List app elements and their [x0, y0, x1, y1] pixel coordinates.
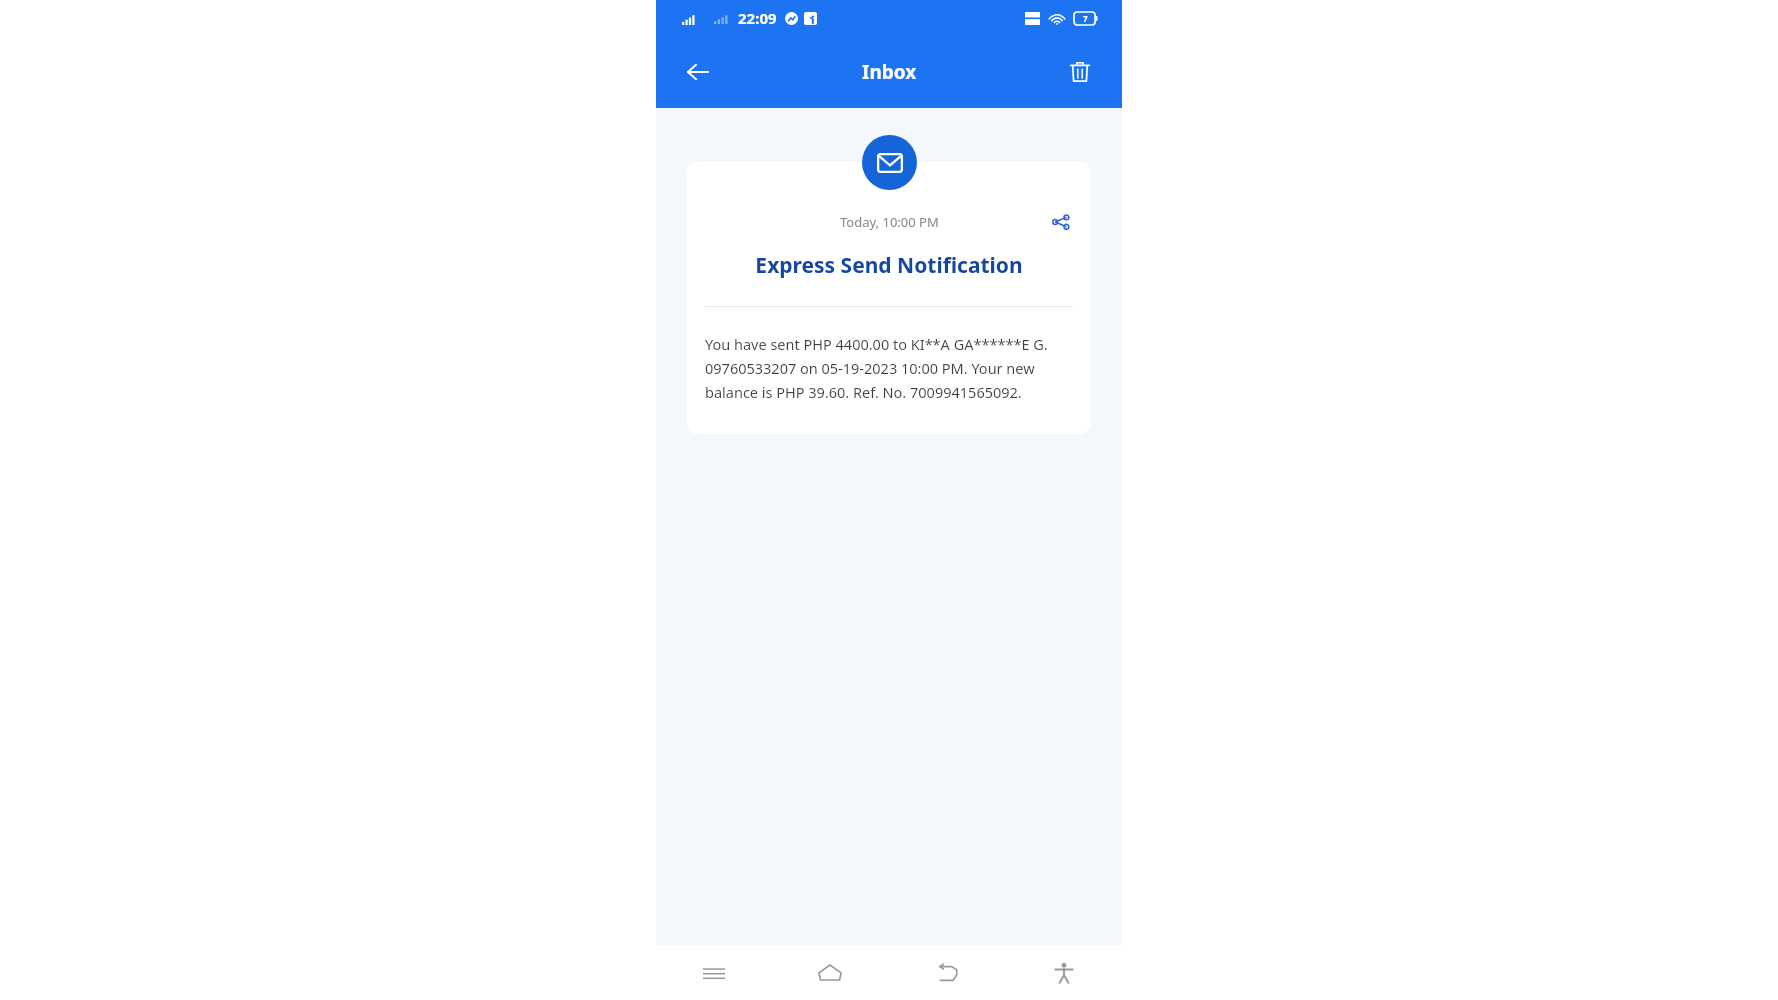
staticText: Today, 10:00 PM: [840, 213, 939, 231]
button[interactable]: Share: [1045, 206, 1077, 238]
button[interactable]: Delete: [1058, 50, 1102, 94]
button[interactable]: Accessibility: [1005, 945, 1122, 1000]
button[interactable]: Back: [888, 945, 1005, 1000]
staticText: Inbox: [862, 59, 917, 85]
staticText: Express Send Notification: [699, 251, 1079, 280]
staticText: 22:09: [738, 8, 777, 28]
staticText: 7: [1083, 13, 1088, 24]
button[interactable]: Menu: [656, 945, 772, 1000]
button[interactable]: Message: [862, 135, 917, 190]
button[interactable]: Home: [772, 945, 888, 1000]
button[interactable]: Back: [676, 50, 720, 94]
button[interactable]: Today, 10:00 PM: [687, 162, 1091, 434]
staticText: You have sent PHP 4400.00 to KI**A GA***…: [705, 334, 1077, 402]
